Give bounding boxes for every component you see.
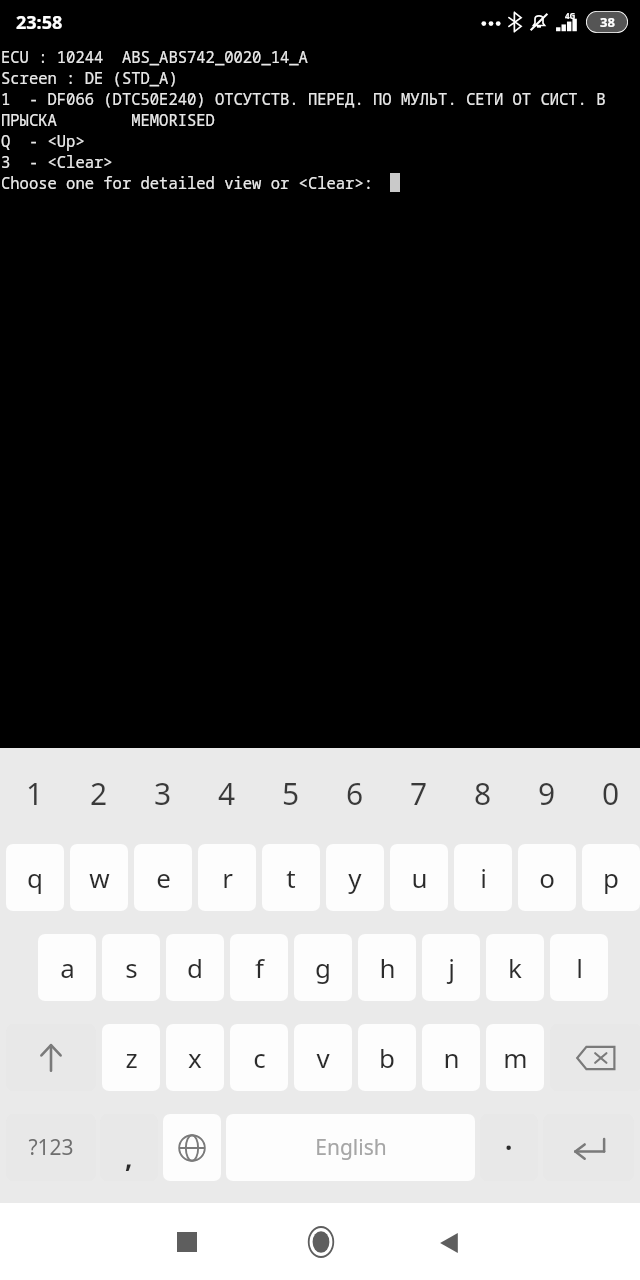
button[interactable]: b — [358, 1024, 416, 1091]
staticText: Choose one for detailed view or <Clear>: — [1, 172, 374, 193]
staticText: q — [27, 860, 43, 895]
staticText: 3 — [154, 773, 172, 814]
button[interactable]: j — [422, 934, 480, 1001]
button[interactable]: Home — [302, 1223, 340, 1261]
staticText: k — [508, 950, 522, 985]
button[interactable]: n — [422, 1024, 480, 1091]
staticText: m — [503, 1040, 528, 1075]
staticText: n — [443, 1040, 460, 1075]
button[interactable]: English — [226, 1114, 475, 1181]
staticText: v — [316, 1040, 330, 1075]
staticText: 9 — [538, 773, 556, 814]
button[interactable]: 2 — [70, 762, 128, 824]
staticText: d — [187, 950, 203, 985]
staticText: ?123 — [28, 1133, 74, 1162]
staticText: , — [125, 1140, 133, 1175]
button[interactable]: Comma — [100, 1114, 158, 1181]
button[interactable]: Back — [432, 1225, 468, 1261]
button[interactable]: t — [262, 844, 320, 911]
staticText: g — [315, 950, 331, 985]
staticText: y — [348, 860, 362, 895]
button[interactable]: f — [230, 934, 288, 1001]
staticText: o — [539, 860, 555, 895]
button[interactable]: g — [294, 934, 352, 1001]
staticText: s — [125, 950, 138, 985]
staticText: l — [576, 950, 583, 985]
button[interactable]: Period — [480, 1114, 538, 1181]
button[interactable]: 9 — [518, 762, 576, 824]
staticText: w — [89, 860, 110, 895]
button[interactable]: Backspace — [550, 1024, 640, 1091]
staticText: 1 — [26, 773, 44, 814]
staticText: ECU : 10244 ABS_ABS742_0020_14_A — [1, 46, 308, 67]
button[interactable]: 1 — [6, 762, 64, 824]
button[interactable]: d — [166, 934, 224, 1001]
staticText: 3 - <Clear> — [1, 151, 113, 172]
staticText: 7 — [410, 773, 428, 814]
staticText: i — [480, 860, 487, 895]
staticText: e — [156, 860, 171, 895]
staticText: 38 — [600, 13, 615, 31]
button[interactable]: Recent apps — [170, 1225, 204, 1259]
button[interactable]: 0 — [582, 762, 640, 824]
staticText: 8 — [474, 773, 492, 814]
button[interactable]: l — [550, 934, 608, 1001]
staticText: 0 — [602, 773, 620, 814]
staticText: . — [505, 1122, 513, 1157]
button[interactable]: u — [390, 844, 448, 911]
button[interactable]: k — [486, 934, 544, 1001]
button[interactable]: 6 — [326, 762, 384, 824]
staticText: 1 - DF066 (DTC50E240) ОТСУТСТВ. ПЕРЕД. П… — [1, 88, 606, 109]
staticText: j — [448, 950, 455, 985]
staticText: t — [286, 860, 296, 895]
button[interactable]: 7 — [390, 762, 448, 824]
staticText: z — [125, 1040, 138, 1075]
button[interactable]: v — [294, 1024, 352, 1091]
button[interactable]: s — [102, 934, 160, 1001]
button[interactable]: q — [6, 844, 64, 911]
button[interactable]: Enter — [543, 1114, 634, 1181]
staticText: English — [315, 1133, 387, 1162]
staticText: Screen : DE (STD_A) — [1, 67, 178, 88]
button[interactable]: Change language — [163, 1114, 221, 1181]
button[interactable]: 4 — [198, 762, 256, 824]
staticText: 23:58 — [16, 10, 63, 35]
staticText: h — [379, 950, 396, 985]
button[interactable]: r — [198, 844, 256, 911]
staticText: x — [188, 1040, 202, 1075]
button[interactable]: w — [70, 844, 128, 911]
staticText: p — [603, 860, 619, 895]
staticText: u — [411, 860, 428, 895]
button[interactable]: m — [486, 1024, 544, 1091]
staticText: Q - <Up> — [1, 130, 85, 151]
button[interactable]: Shift — [6, 1024, 96, 1091]
button[interactable]: e — [134, 844, 192, 911]
button[interactable]: p — [582, 844, 640, 911]
staticText: r — [222, 860, 233, 895]
button[interactable]: o — [518, 844, 576, 911]
staticText: 5 — [282, 773, 300, 814]
button[interactable]: ?123 — [6, 1114, 96, 1181]
staticText: f — [255, 950, 264, 985]
staticText: 6 — [346, 773, 364, 814]
staticText: 4G — [565, 10, 576, 21]
button[interactable]: i — [454, 844, 512, 911]
button[interactable]: x — [166, 1024, 224, 1091]
button[interactable]: h — [358, 934, 416, 1001]
button[interactable]: 5 — [262, 762, 320, 824]
button[interactable]: y — [326, 844, 384, 911]
staticText: ПРЫСКА MEMORISED — [1, 109, 215, 130]
button[interactable]: 3 — [134, 762, 192, 824]
button[interactable]: z — [102, 1024, 160, 1091]
staticText: 4 — [218, 773, 236, 814]
staticText: b — [379, 1040, 395, 1075]
button[interactable]: a — [38, 934, 96, 1001]
staticText: c — [253, 1040, 266, 1075]
button[interactable]: 8 — [454, 762, 512, 824]
staticText: a — [60, 950, 75, 985]
button[interactable]: c — [230, 1024, 288, 1091]
staticText: 2 — [90, 773, 108, 814]
